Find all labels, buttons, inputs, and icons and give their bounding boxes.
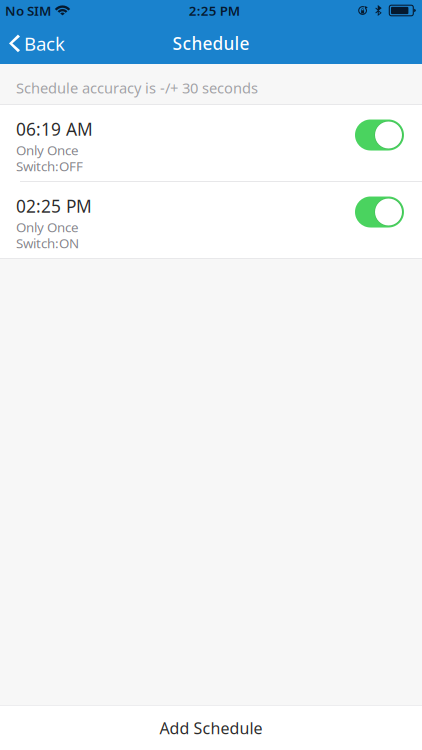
staticText: Switch:ON <box>16 234 79 252</box>
staticText: Only Once <box>16 218 79 236</box>
staticText: Schedule accuracy is -/+ 30 seconds <box>16 78 258 97</box>
staticText: Back <box>24 31 65 56</box>
staticText: 02:25 PM <box>16 194 92 217</box>
button[interactable]: 02:25 PM <box>0 182 422 258</box>
staticText: No SIM <box>5 2 51 19</box>
button[interactable]: Add Schedule <box>0 706 422 750</box>
staticText: Only Once <box>16 141 79 159</box>
button[interactable]: Back <box>0 23 75 64</box>
staticText: Switch:OFF <box>16 157 83 175</box>
staticText: 2:25 PM <box>189 2 240 19</box>
staticText: Add Schedule <box>159 717 262 739</box>
button[interactable]: 06:19 AM <box>0 105 422 181</box>
staticText: Schedule <box>172 32 249 55</box>
staticText: 06:19 AM <box>16 117 93 140</box>
